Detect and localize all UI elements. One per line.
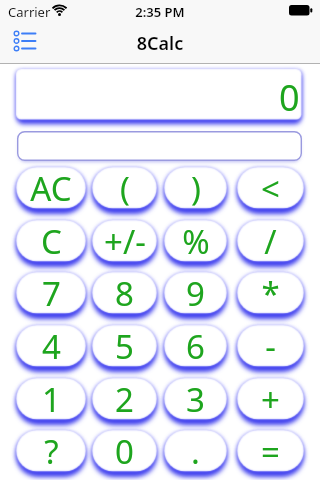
staticText: / — [264, 219, 277, 262]
button[interactable]: ? — [15, 429, 87, 473]
staticText: 3 — [186, 377, 205, 420]
button[interactable]: +/- — [91, 219, 158, 263]
button[interactable]: / — [236, 219, 305, 263]
staticText: ) — [191, 166, 201, 209]
staticText: * — [261, 271, 280, 314]
staticText: ( — [120, 166, 130, 209]
staticText: C — [41, 219, 62, 262]
staticText: 2:35 PM — [0, 3, 320, 21]
button[interactable] — [17, 131, 302, 161]
staticText: < — [261, 166, 280, 209]
staticText: 2 — [115, 377, 134, 420]
button[interactable]: 8 — [91, 271, 158, 315]
staticText: = — [261, 429, 280, 472]
staticText: ? — [44, 429, 59, 472]
staticText: 1 — [42, 377, 61, 420]
button[interactable]: * — [236, 271, 305, 315]
button[interactable]: AC — [15, 166, 87, 210]
staticText: AC — [30, 166, 72, 209]
staticText: 8 — [115, 271, 134, 314]
button[interactable]: ) — [163, 166, 228, 210]
staticText: - — [265, 324, 276, 367]
button[interactable]: . — [163, 429, 228, 473]
button[interactable]: < — [236, 166, 305, 210]
button[interactable]: 3 — [163, 377, 228, 421]
button[interactable]: 4 — [15, 324, 87, 368]
staticText: . — [191, 429, 200, 472]
button[interactable]: 5 — [91, 324, 158, 368]
button[interactable]: % — [163, 219, 228, 263]
staticText: Carrier — [8, 3, 51, 21]
staticText: 9 — [186, 271, 205, 314]
button[interactable] — [6, 26, 46, 58]
staticText: 4 — [42, 324, 61, 367]
button[interactable]: + — [236, 377, 305, 421]
staticText: 0 — [115, 429, 134, 472]
button[interactable]: 0 — [15, 68, 303, 121]
staticText: 7 — [42, 271, 61, 314]
staticText: 5 — [115, 324, 134, 367]
button[interactable]: 0 — [91, 429, 158, 473]
staticText: 6 — [186, 324, 205, 367]
button[interactable]: 1 — [15, 377, 87, 421]
button[interactable]: ( — [91, 166, 158, 210]
staticText: % — [182, 219, 210, 262]
staticText: +/- — [104, 219, 146, 262]
button[interactable]: 2 — [91, 377, 158, 421]
staticText: 0 — [279, 73, 300, 122]
button[interactable]: 9 — [163, 271, 228, 315]
button[interactable]: 6 — [163, 324, 228, 368]
button[interactable]: C — [15, 219, 87, 263]
button[interactable]: - — [236, 324, 305, 368]
button[interactable]: = — [236, 429, 305, 473]
staticText: 8Calc — [0, 31, 320, 56]
staticText: + — [261, 377, 280, 420]
button[interactable]: 7 — [15, 271, 87, 315]
